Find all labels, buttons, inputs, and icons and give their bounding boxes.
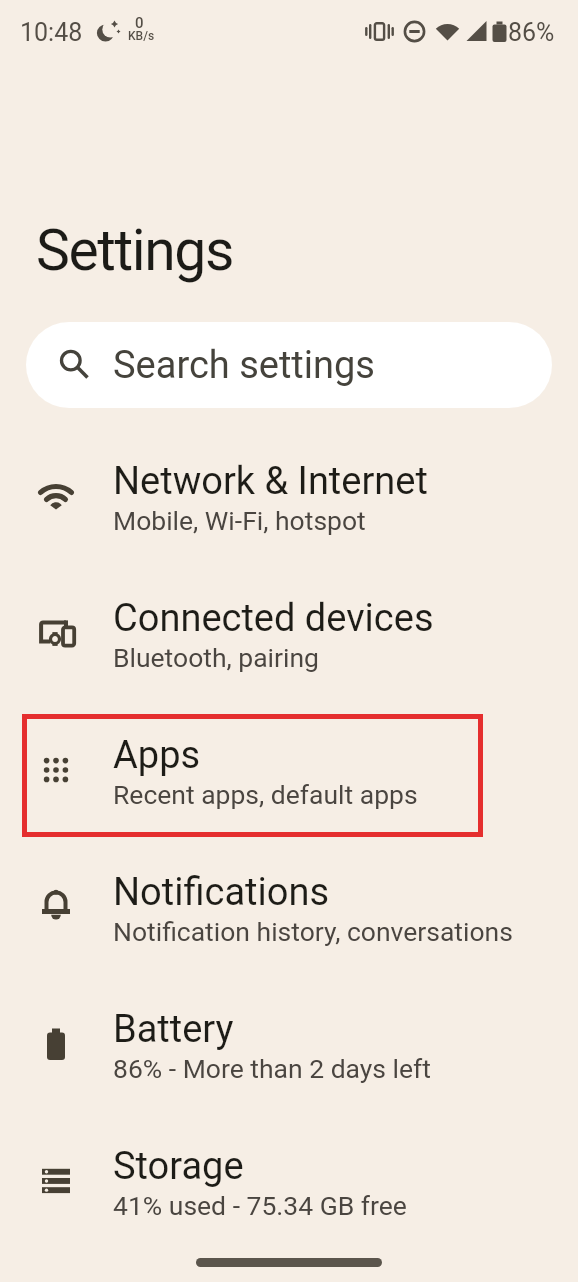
staticText: Search settings bbox=[113, 343, 375, 388]
staticText: Connected devices bbox=[113, 596, 434, 641]
staticText: Notification history, conversations bbox=[113, 916, 513, 947]
button[interactable]: Notifications bbox=[0, 843, 578, 980]
button[interactable]: Battery bbox=[0, 980, 578, 1117]
staticText: Battery bbox=[113, 1007, 234, 1052]
button[interactable]: Network & Internet bbox=[0, 432, 578, 569]
staticText: Bluetooth, pairing bbox=[113, 642, 319, 673]
staticText: Notifications bbox=[113, 870, 330, 915]
staticText: KB/s bbox=[128, 29, 155, 43]
staticText: Storage bbox=[113, 1144, 244, 1189]
staticText: 10:48 bbox=[20, 18, 83, 47]
staticText: 86% - More than 2 days left bbox=[113, 1053, 431, 1084]
staticText: 41% used - 75.34 GB free bbox=[113, 1190, 407, 1221]
button[interactable]: Storage bbox=[0, 1117, 578, 1254]
staticText: 0 bbox=[135, 14, 144, 32]
button[interactable]: Apps bbox=[0, 706, 578, 843]
staticText: Settings bbox=[36, 217, 233, 284]
staticText: 86% bbox=[508, 18, 555, 47]
staticText: Mobile, Wi-Fi, hotspot bbox=[113, 505, 366, 536]
button[interactable]: Search settings bbox=[26, 322, 552, 408]
button[interactable]: Connected devices bbox=[0, 569, 578, 706]
staticText: Recent apps, default apps bbox=[113, 779, 418, 810]
staticText: Network & Internet bbox=[113, 459, 428, 504]
staticText: Apps bbox=[113, 733, 201, 778]
